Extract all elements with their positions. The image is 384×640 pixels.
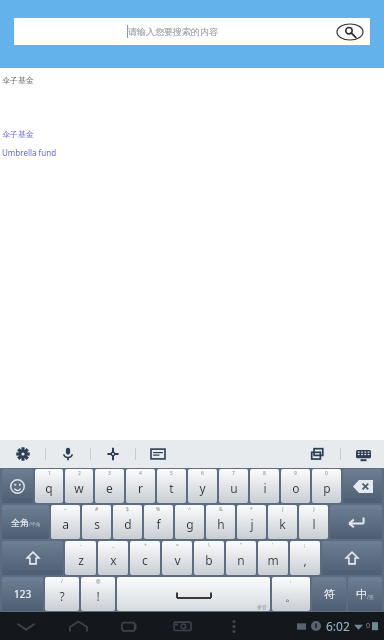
- staticText: ?: [59, 588, 65, 604]
- button[interactable]: (: [268, 505, 297, 539]
- staticText: l: [312, 516, 316, 532]
- button[interactable]: 0: [312, 469, 341, 503]
- button[interactable]: ): [299, 505, 328, 539]
- button[interactable]: &: [206, 505, 235, 539]
- button[interactable]: ;: [290, 541, 320, 575]
- button[interactable]: \: [194, 541, 224, 575]
- staticText: ~: [64, 506, 67, 513]
- staticText: !: [96, 588, 100, 604]
- button[interactable]: @: [81, 577, 115, 611]
- button[interactable]: ': [258, 541, 288, 575]
- staticText: $: [126, 506, 129, 513]
- staticText: 。: [285, 589, 297, 604]
- button[interactable]: 8: [250, 469, 279, 503]
- button[interactable]: Shift: [2, 541, 63, 575]
- staticText: 8: [263, 470, 266, 477]
- staticText: /半角: [29, 521, 41, 528]
- button[interactable]: ": [226, 541, 256, 575]
- button[interactable]: =: [162, 541, 192, 575]
- staticText: k: [279, 516, 286, 532]
- staticText: 4: [139, 470, 142, 477]
- staticText: c: [142, 552, 148, 568]
- button[interactable]: Screenshot: [156, 612, 208, 640]
- button[interactable]: Split keyboard: [305, 441, 331, 467]
- button[interactable]: Shift right: [322, 541, 382, 575]
- button[interactable]: 请输入您要搜索的内容: [14, 18, 370, 45]
- staticText: 2: [78, 470, 81, 477]
- staticText: p: [323, 480, 331, 496]
- button[interactable]: 3: [95, 469, 124, 503]
- button[interactable]: 伞子基金: [2, 129, 34, 139]
- button[interactable]: Numbers: [2, 577, 43, 611]
- staticText: h: [217, 516, 225, 532]
- staticText: ": [240, 542, 243, 549]
- button[interactable]: Handwriting: [145, 441, 171, 467]
- staticText: 中: [356, 587, 367, 601]
- staticText: 9: [294, 470, 297, 477]
- button[interactable]: 1: [35, 469, 63, 503]
- staticText: 1: [48, 470, 51, 477]
- staticText: r: [138, 480, 143, 496]
- button[interactable]: 6: [188, 469, 217, 503]
- button[interactable]: Space: [117, 577, 270, 611]
- staticText: 7: [232, 470, 235, 477]
- button[interactable]: ~: [51, 505, 80, 539]
- staticText: *: [250, 506, 253, 513]
- button[interactable]: Menu: [208, 612, 260, 640]
- button[interactable]: Voice input: [55, 441, 81, 467]
- button[interactable]: %: [144, 505, 173, 539]
- staticText: _: [112, 542, 115, 549]
- staticText: i: [263, 480, 267, 496]
- button[interactable]: Enter: [330, 505, 382, 539]
- button[interactable]: Umbrella fund: [2, 147, 57, 158]
- button[interactable]: +: [130, 541, 160, 575]
- staticText: ^: [188, 506, 191, 513]
- button[interactable]: :: [272, 577, 310, 611]
- button[interactable]: Full width toggle: [2, 505, 49, 539]
- button[interactable]: _: [98, 541, 128, 575]
- button[interactable]: ^: [175, 505, 204, 539]
- button[interactable]: Search: [330, 18, 370, 45]
- staticText: q: [45, 480, 53, 496]
- button[interactable]: *: [237, 505, 266, 539]
- staticText: u: [230, 480, 238, 496]
- button[interactable]: Move keyboard: [100, 441, 126, 467]
- button[interactable]: 4: [126, 469, 155, 503]
- button[interactable]: #: [82, 505, 111, 539]
- staticText: (: [282, 506, 284, 513]
- button[interactable]: -: [65, 541, 96, 575]
- button[interactable]: 2: [65, 469, 93, 503]
- staticText: 拼音: [257, 604, 267, 610]
- button[interactable]: Language: [348, 577, 382, 611]
- button[interactable]: Backspace: [343, 469, 382, 503]
- staticText: 3: [108, 470, 111, 477]
- button[interactable]: $: [113, 505, 142, 539]
- button[interactable]: /: [45, 577, 79, 611]
- button[interactable]: Hide keyboard: [350, 441, 376, 467]
- button[interactable]: Settings: [10, 441, 36, 467]
- staticText: 6: [201, 470, 204, 477]
- staticText: ': [272, 542, 274, 549]
- staticText: 符: [324, 587, 335, 601]
- button[interactable]: 7: [219, 469, 248, 503]
- staticText: ): [313, 506, 315, 513]
- button[interactable]: Recents: [104, 612, 156, 640]
- staticText: t: [169, 480, 174, 496]
- staticText: n: [237, 552, 245, 568]
- staticText: f: [156, 516, 161, 532]
- staticText: a: [62, 516, 69, 532]
- staticText: g: [186, 516, 194, 532]
- button[interactable]: Symbols: [312, 577, 346, 611]
- button[interactable]: Emoji: [2, 469, 33, 503]
- staticText: ,: [303, 552, 307, 568]
- staticText: =: [176, 542, 179, 549]
- button[interactable]: 9: [281, 469, 310, 503]
- button[interactable]: Back: [0, 612, 52, 640]
- staticText: 123: [14, 587, 32, 601]
- staticText: :: [290, 578, 292, 585]
- staticText: o: [292, 480, 300, 496]
- staticText: w: [74, 480, 84, 496]
- button[interactable]: Home: [52, 612, 104, 640]
- staticText: d: [124, 516, 132, 532]
- button[interactable]: 5: [157, 469, 186, 503]
